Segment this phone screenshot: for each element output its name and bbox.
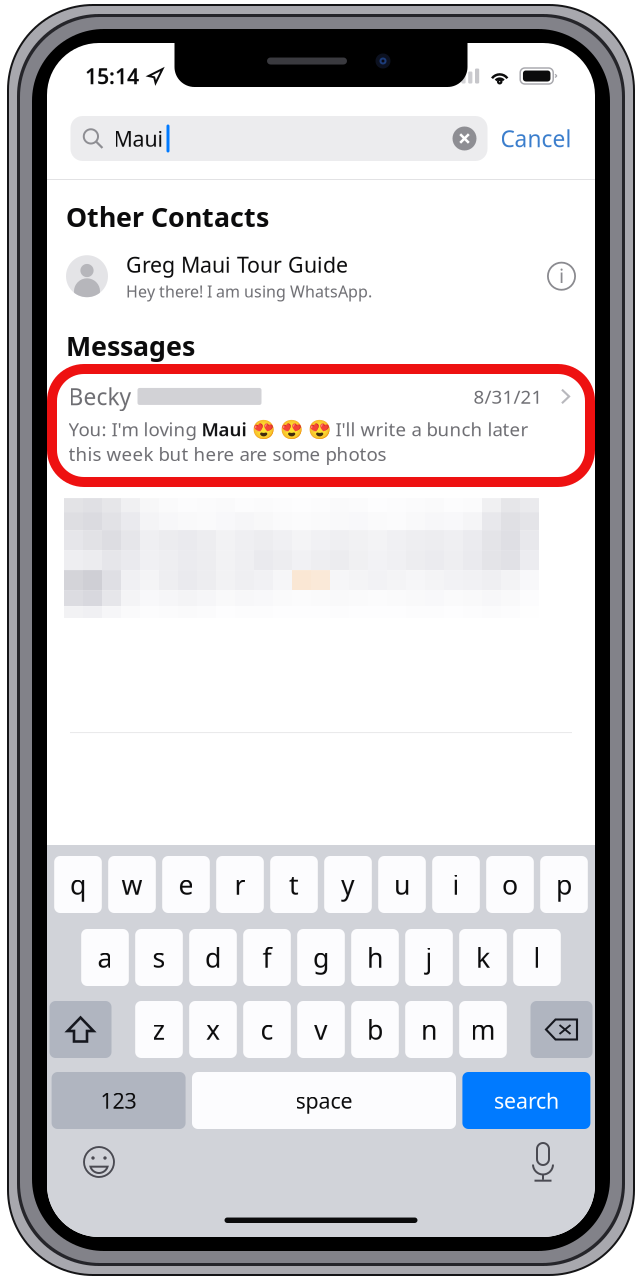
staticText: f [262,940,271,975]
button[interactable]: Maui [70,116,487,161]
button[interactable]: d [189,929,237,986]
button[interactable]: 123 [52,1072,186,1129]
button[interactable]: z [135,1001,183,1058]
staticText: y [341,867,355,902]
button[interactable]: space [192,1072,456,1129]
button[interactable]: Emoji keyboard [73,1141,125,1183]
staticText: space [295,1086,352,1115]
staticText: e [178,867,193,902]
button[interactable]: r [216,856,264,913]
staticText: 15:14 [85,62,139,90]
staticText: r [234,867,245,902]
button[interactable]: p [540,856,588,913]
staticText: m [470,1012,495,1047]
staticText: v [314,1012,328,1047]
button[interactable]: f [243,929,291,986]
button[interactable]: e [162,856,210,913]
button[interactable]: h [351,929,399,986]
staticText: 123 [101,1086,137,1115]
staticText: i [452,867,459,902]
button[interactable]: t [270,856,318,913]
staticText: u [394,867,410,902]
staticText: Messages [66,328,195,363]
button[interactable]: u [378,856,426,913]
staticText: i [559,262,564,289]
staticText: o [502,867,518,902]
staticText: s [152,940,165,975]
staticText: d [205,940,221,975]
button[interactable]: i [432,856,480,913]
staticText: search [494,1086,559,1115]
button[interactable]: Greg Maui Tour Guide [66,250,576,302]
button[interactable]: Delete [530,1001,592,1058]
staticText: h [367,940,383,975]
button[interactable]: Shift [49,1001,111,1058]
staticText: b [367,1012,383,1047]
staticText: You: I'm loving Maui 😍 😍 😍 I'll write a … [68,416,528,466]
staticText: Maui [113,124,163,153]
staticText: w [121,867,142,902]
button[interactable]: Cancel [500,123,571,153]
staticText: Cancel [500,123,571,153]
staticText: z [152,1012,165,1047]
staticText: l [533,940,540,975]
staticText: Greg Maui Tour Guide [126,250,348,279]
button[interactable]: y [324,856,372,913]
staticText: c [260,1012,273,1047]
button[interactable]: x [189,1001,237,1058]
staticText: Becky [68,381,131,411]
button[interactable]: c [243,1001,291,1058]
staticText: Other Contacts [66,199,269,234]
staticText: a [97,940,112,975]
staticText: n [421,1012,437,1047]
button[interactable]: q [54,856,102,913]
button[interactable]: o [486,856,534,913]
button[interactable]: g [297,929,345,986]
button[interactable]: s [135,929,183,986]
staticText: 8/31/21 [473,384,542,409]
button[interactable]: k [459,929,507,986]
button[interactable]: l [513,929,561,986]
staticText: Hey there! I am using WhatsApp. [126,281,372,302]
staticText: x [206,1012,220,1047]
button[interactable]: n [405,1001,453,1058]
button[interactable]: w [108,856,156,913]
staticText: g [313,940,329,975]
button[interactable]: search [462,1072,590,1129]
button[interactable]: j [405,929,453,986]
staticText: k [476,940,490,975]
staticText: t [289,867,299,902]
staticText: p [556,867,572,902]
button[interactable]: b [351,1001,399,1058]
staticText: j [425,940,432,975]
button[interactable]: a [81,929,129,986]
button[interactable]: v [297,1001,345,1058]
staticText: q [70,867,86,902]
button[interactable]: Becky [68,381,573,466]
button[interactable]: Dictation [517,1141,569,1183]
button[interactable]: m [459,1001,507,1058]
